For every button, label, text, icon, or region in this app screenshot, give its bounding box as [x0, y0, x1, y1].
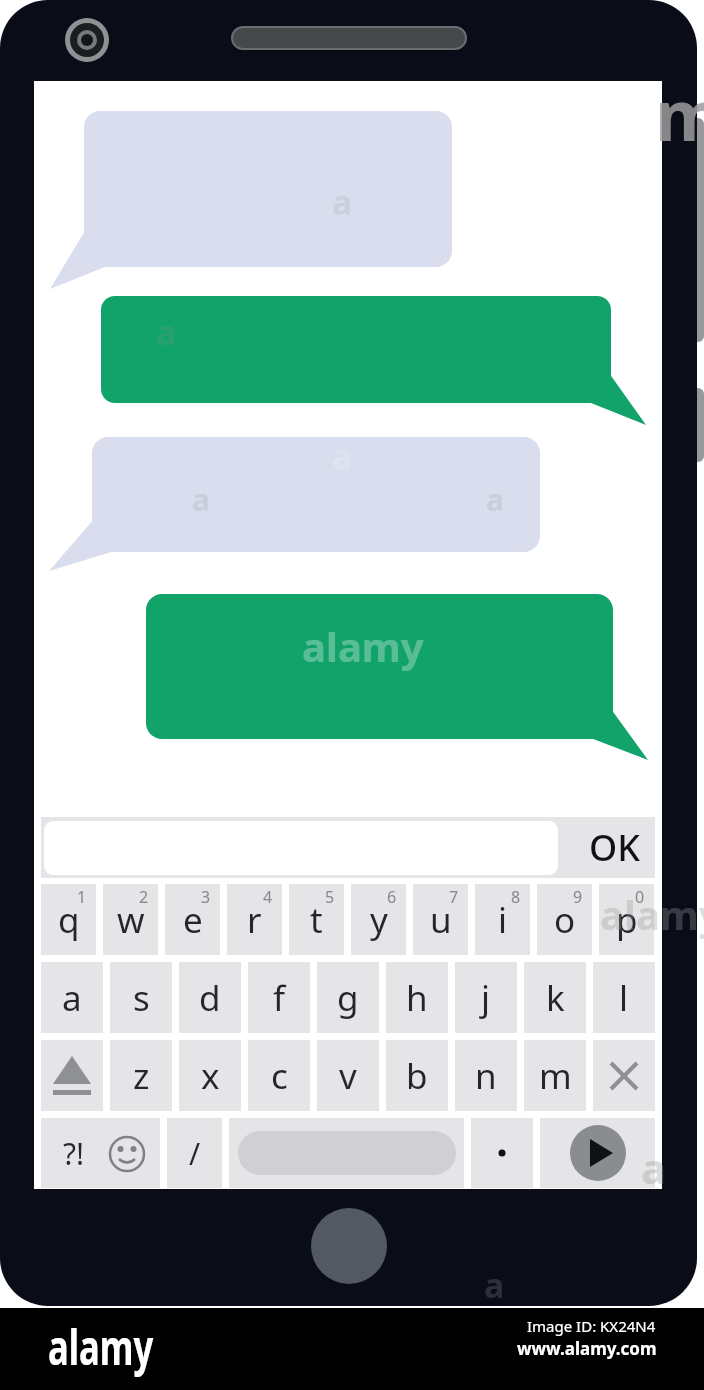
- button[interactable]: j: [455, 962, 517, 1033]
- button[interactable]: h: [386, 962, 448, 1033]
- button[interactable]: ?!: [41, 1118, 160, 1188]
- staticText: v: [339, 1052, 357, 1100]
- button[interactable]: u: [413, 884, 468, 955]
- staticText: y: [370, 896, 388, 944]
- staticText: o: [554, 896, 576, 944]
- staticText: 7: [449, 886, 459, 908]
- staticText: j: [481, 974, 491, 1022]
- staticText: 5: [325, 886, 335, 908]
- button[interactable]: l: [593, 962, 655, 1033]
- staticText: a: [332, 433, 353, 479]
- button[interactable]: v: [317, 1040, 379, 1111]
- button[interactable]: /: [167, 1118, 222, 1188]
- staticText: p: [616, 896, 638, 944]
- button[interactable]: m: [524, 1040, 586, 1111]
- staticText: u: [430, 896, 452, 944]
- staticText: n: [475, 1052, 497, 1100]
- staticText: e: [183, 896, 203, 944]
- staticText: 4: [263, 886, 273, 908]
- button[interactable]: [593, 1040, 655, 1111]
- button[interactable]: r: [227, 884, 282, 955]
- staticText: c: [271, 1052, 288, 1100]
- button[interactable]: [540, 1118, 655, 1188]
- staticText: m: [539, 1052, 572, 1100]
- button[interactable]: c: [248, 1040, 310, 1111]
- staticText: OK: [589, 823, 640, 872]
- staticText: 1: [77, 886, 87, 908]
- button[interactable]: k: [524, 962, 586, 1033]
- staticText: z: [133, 1052, 150, 1100]
- button[interactable]: z: [110, 1040, 172, 1111]
- staticText: 8: [511, 886, 521, 908]
- button[interactable]: b: [386, 1040, 448, 1111]
- button[interactable]: s: [110, 962, 172, 1033]
- staticText: a: [641, 1139, 667, 1196]
- staticText: a: [62, 974, 82, 1022]
- button[interactable]: x: [179, 1040, 241, 1111]
- staticText: d: [199, 974, 221, 1022]
- staticText: q: [58, 896, 80, 944]
- button[interactable]: f: [248, 962, 310, 1033]
- staticText: ?!: [63, 1133, 85, 1174]
- button[interactable]: w: [103, 884, 158, 955]
- button[interactable]: [41, 1040, 103, 1111]
- staticText: 2: [139, 886, 149, 908]
- button[interactable]: d: [179, 962, 241, 1033]
- button[interactable]: [229, 1118, 464, 1188]
- button[interactable]: i: [475, 884, 530, 955]
- staticText: f: [273, 974, 286, 1022]
- button[interactable]: p: [599, 884, 654, 955]
- button[interactable]: q: [41, 884, 96, 955]
- button[interactable]: t: [289, 884, 344, 955]
- staticText: 6: [387, 886, 397, 908]
- button[interactable]: OK: [574, 817, 655, 878]
- staticText: l: [619, 974, 629, 1022]
- staticText: alamy: [48, 1314, 154, 1379]
- staticText: a: [192, 479, 210, 520]
- staticText: 0: [635, 886, 645, 908]
- staticText: 3: [201, 886, 211, 908]
- button[interactable]: [471, 1118, 533, 1188]
- staticText: k: [546, 974, 565, 1022]
- staticText: r: [247, 896, 262, 944]
- staticText: b: [406, 1052, 428, 1100]
- staticText: Image ID: KX24N4: [527, 1316, 656, 1336]
- button[interactable]: o: [537, 884, 592, 955]
- staticText: alamy: [302, 619, 424, 673]
- button[interactable]: n: [455, 1040, 517, 1111]
- staticText: g: [337, 974, 359, 1022]
- staticText: a: [156, 309, 177, 355]
- staticText: a: [486, 479, 504, 520]
- staticText: a: [484, 1262, 505, 1308]
- staticText: x: [201, 1052, 220, 1100]
- staticText: www.alamy.com: [517, 1337, 657, 1360]
- staticText: h: [406, 974, 428, 1022]
- staticText: s: [133, 974, 150, 1022]
- staticText: /: [189, 1133, 201, 1174]
- staticText: 9: [573, 886, 583, 908]
- staticText: my: [655, 66, 704, 161]
- staticText: a: [332, 179, 353, 225]
- button[interactable]: a: [41, 962, 103, 1033]
- staticText: alamy: [600, 887, 704, 941]
- staticText: w: [117, 896, 145, 944]
- staticText: t: [310, 896, 323, 944]
- button[interactable]: g: [317, 962, 379, 1033]
- staticText: i: [498, 896, 508, 944]
- button[interactable]: y: [351, 884, 406, 955]
- button[interactable]: e: [165, 884, 220, 955]
